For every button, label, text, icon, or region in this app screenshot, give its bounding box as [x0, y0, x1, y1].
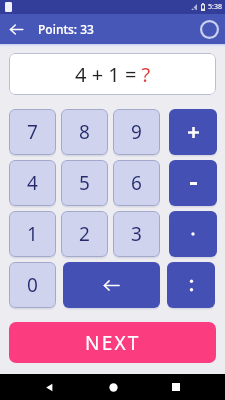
button[interactable]: 9 [113, 109, 160, 155]
button[interactable]: 7 [9, 109, 56, 155]
staticText: 7 [27, 119, 38, 145]
staticText: 5 [79, 170, 90, 196]
staticText: 0 [27, 272, 38, 298]
button[interactable]: Divide [167, 262, 215, 308]
staticText: 8 [79, 119, 90, 145]
button[interactable]: Minus [169, 160, 217, 206]
button[interactable]: 2 [61, 211, 108, 257]
button[interactable]: 1 [9, 211, 56, 257]
button[interactable]: 3 [113, 211, 160, 257]
button[interactable]: 4 + 1 = ? [9, 53, 216, 95]
button[interactable]: 0 [9, 262, 56, 308]
button[interactable]: 4 [9, 160, 56, 206]
button[interactable]: Back [39, 377, 59, 397]
staticText: 2 [79, 221, 90, 247]
staticText: 4 + 1 = ? [75, 61, 151, 88]
button[interactable]: Timer [197, 17, 221, 41]
staticText: 6 [131, 170, 142, 196]
button[interactable]: Plus [169, 109, 217, 155]
button[interactable]: 6 [113, 160, 160, 206]
button[interactable]: Home [103, 377, 123, 397]
staticText: 3 [131, 221, 142, 247]
button[interactable]: Recents [166, 377, 186, 397]
button[interactable]: Multiply [169, 211, 217, 257]
button[interactable]: 5 [61, 160, 108, 206]
button[interactable]: Backspace [63, 262, 160, 308]
staticText: NEXT [85, 330, 141, 356]
button[interactable]: Back [0, 14, 32, 44]
button[interactable]: NEXT [9, 322, 216, 363]
button[interactable]: 8 [61, 109, 108, 155]
staticText: 9 [131, 119, 142, 145]
staticText: 4 [27, 170, 38, 196]
staticText: Points: 33 [38, 21, 94, 37]
staticText: 5:38 [208, 2, 222, 12]
staticText: 1 [27, 221, 38, 247]
